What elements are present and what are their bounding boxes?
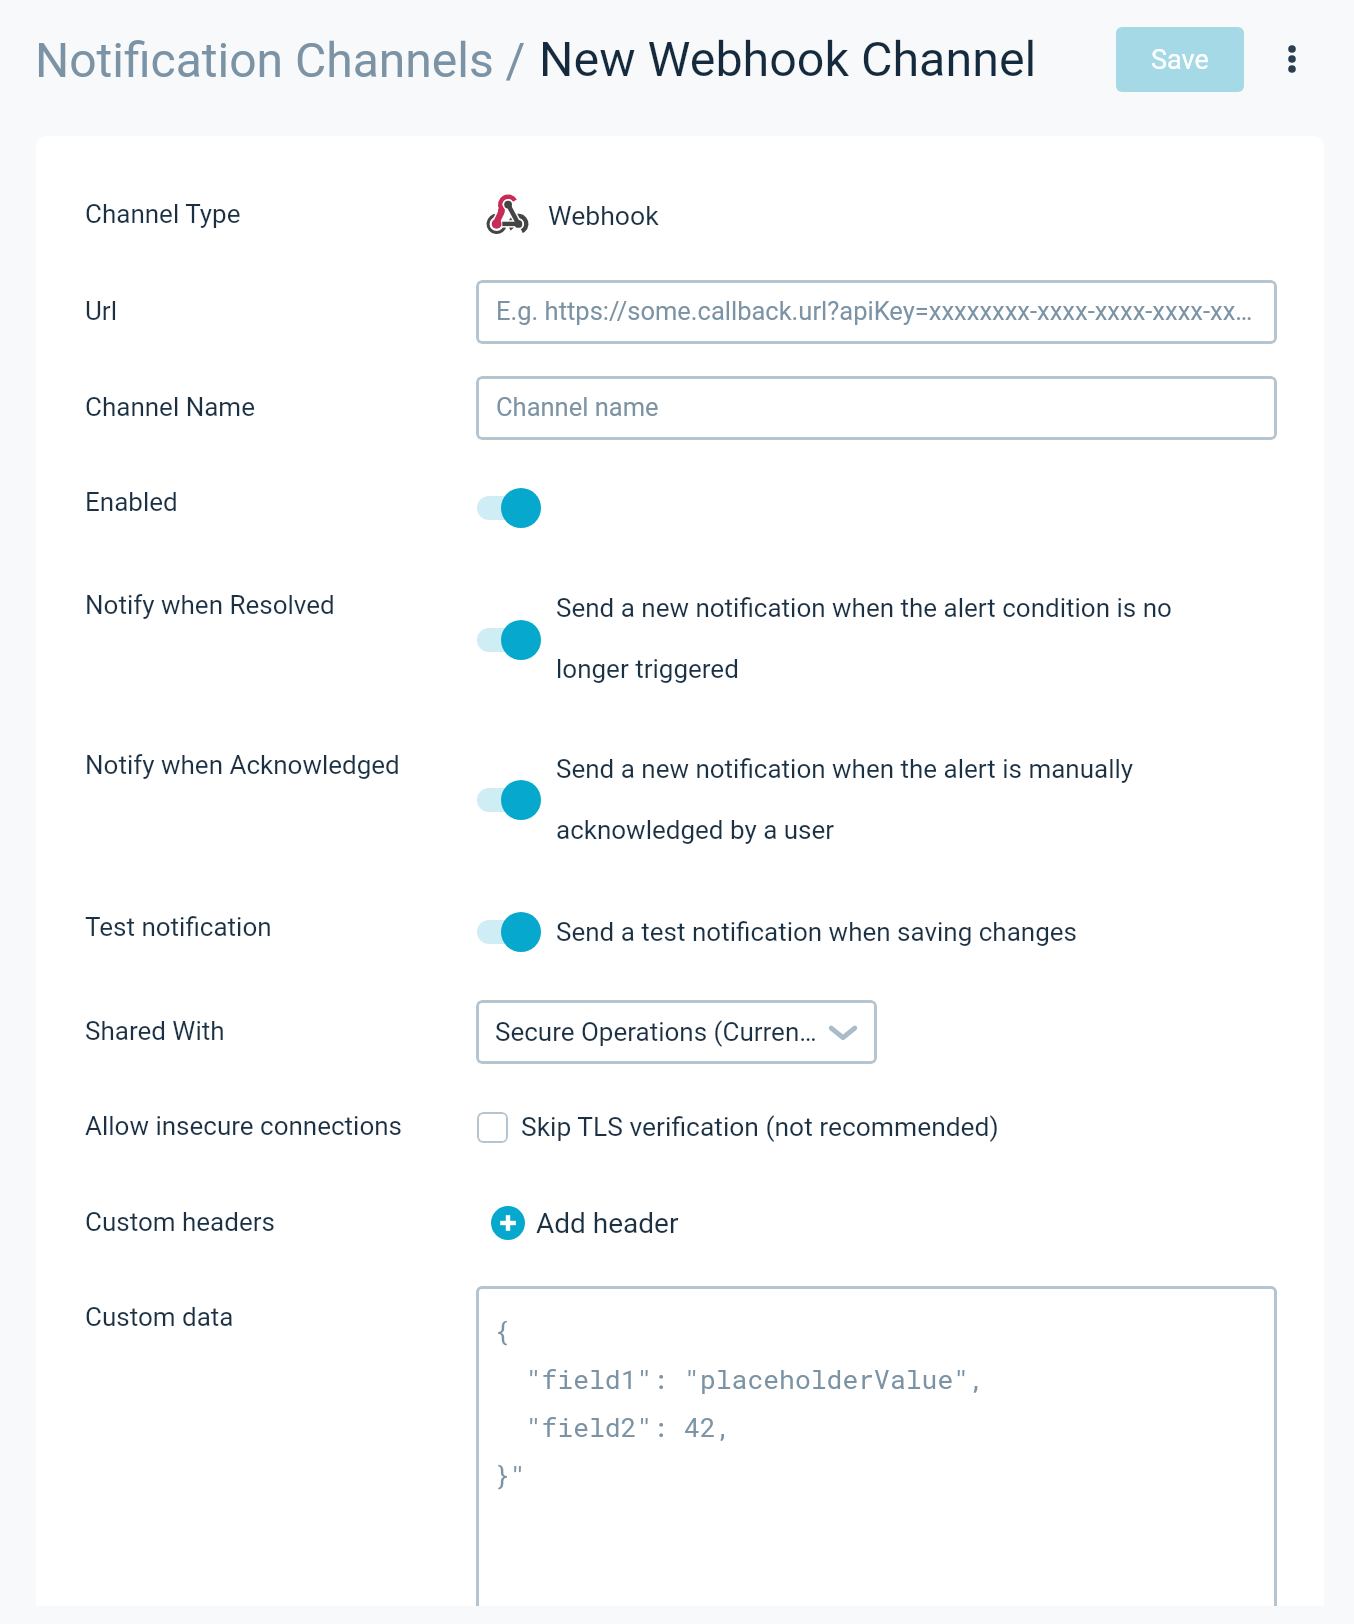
staticText: Channel name — [496, 392, 659, 422]
staticText: Enabled — [85, 487, 178, 517]
staticText: Allow insecure connections — [85, 1111, 403, 1141]
staticText: Notify when Acknowledged — [85, 750, 400, 780]
staticText: Channel Name — [85, 392, 255, 422]
staticText: Shared With — [85, 1016, 225, 1046]
button[interactable]: Send a test notification when saving cha… — [475, 910, 1095, 954]
button[interactable]: { "field1": "placeholderValue", "field2"… — [476, 1286, 1277, 1624]
staticText: Save — [1151, 44, 1209, 76]
button[interactable]: Enabled — [475, 486, 545, 530]
button[interactable]: Notification Channels / — [35, 20, 532, 98]
staticText: Secure Operations (Curren… — [495, 1017, 817, 1047]
button[interactable]: More options — [1262, 29, 1322, 89]
button[interactable]: Add header — [491, 1203, 681, 1243]
button[interactable] — [476, 280, 1277, 344]
button[interactable]: Skip TLS verification (not recommended) — [477, 1108, 997, 1148]
staticText: Channel Type — [85, 199, 241, 229]
staticText: E.g. https://some.callback.url?apiKey=xx… — [496, 296, 1256, 326]
staticText: Test notification — [85, 912, 272, 942]
staticText: New Webhook Channel — [539, 31, 1037, 88]
staticText: Notify when Resolved — [85, 590, 335, 620]
staticText: Notification Channels / — [35, 32, 526, 88]
staticText: { "field1": "placeholderValue", "field2"… — [494, 1313, 985, 1492]
button[interactable] — [476, 376, 1277, 440]
staticText: Custom data — [85, 1302, 234, 1332]
staticText: Webhook — [548, 200, 659, 231]
staticText: Url — [85, 296, 117, 326]
button[interactable]: Save — [1116, 27, 1244, 92]
button[interactable]: Send a new notification when the alert i… — [475, 747, 1175, 855]
staticText: Send a new notification when the alert i… — [556, 754, 1166, 846]
staticText: Custom headers — [85, 1207, 275, 1237]
staticText: Skip TLS verification (not recommended) — [521, 1112, 999, 1143]
button[interactable]: Secure Operations (Curren… — [476, 1000, 877, 1064]
button[interactable]: Send a new notification when the alert c… — [475, 586, 1205, 694]
staticText: Send a new notification when the alert c… — [556, 593, 1196, 685]
staticText: Send a test notification when saving cha… — [556, 917, 1077, 947]
staticText: Add header — [536, 1207, 679, 1240]
